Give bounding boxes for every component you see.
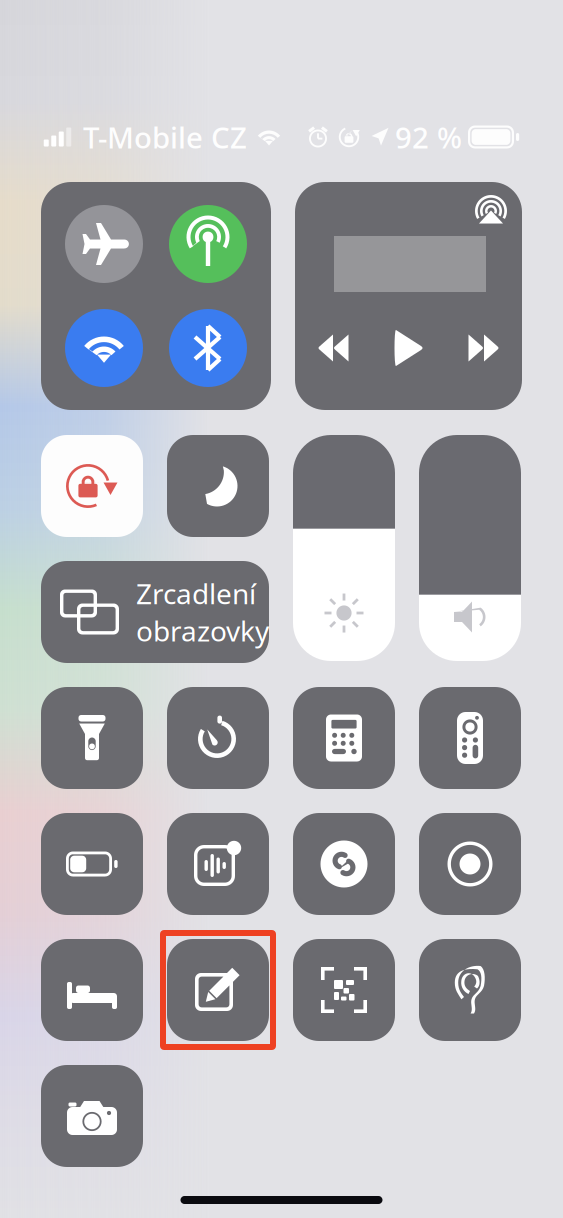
button[interactable]: Camera: [41, 1065, 143, 1167]
button[interactable]: Quick Note: [167, 939, 269, 1041]
button[interactable]: Apple TV Remote: [419, 687, 521, 789]
staticText: 92 %: [395, 117, 462, 156]
button[interactable]: Timer: [167, 687, 269, 789]
button[interactable]: Hearing: [419, 939, 521, 1041]
button[interactable]: Cellular Data: [169, 205, 247, 283]
button[interactable]: Low Power Mode: [41, 813, 143, 915]
button[interactable]: AirPlay: [474, 194, 508, 226]
staticText: T-Mobile CZ: [83, 117, 247, 156]
button[interactable]: Bluetooth: [169, 309, 247, 387]
button[interactable]: Sound Recognition: [167, 813, 269, 915]
button[interactable]: Code Scanner: [293, 939, 395, 1041]
button[interactable]: Rewind: [319, 334, 349, 362]
staticText: Zrcadlení obrazovky: [136, 575, 269, 649]
button[interactable]: Airplane Mode: [65, 205, 143, 283]
button[interactable]: Sleep Mode: [41, 939, 143, 1041]
button[interactable]: Zrcadlení obrazovky: [41, 561, 269, 663]
button[interactable]: Wi-Fi: [65, 309, 143, 387]
button[interactable]: Fast Forward: [468, 334, 498, 362]
button[interactable]: Play: [394, 329, 422, 367]
button[interactable]: Rotation Lock: [41, 435, 143, 537]
button[interactable]: Flashlight: [41, 687, 143, 789]
button[interactable]: Music Recognition: [293, 813, 395, 915]
button[interactable]: Calculator: [293, 687, 395, 789]
button[interactable]: Screen Recording: [419, 813, 521, 915]
button[interactable]: Do Not Disturb: [167, 435, 269, 537]
